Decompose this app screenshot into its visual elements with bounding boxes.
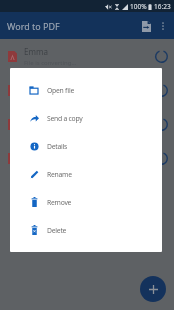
button[interactable]: Open file: [10, 76, 162, 104]
button[interactable]: Send a copy: [10, 104, 162, 132]
button[interactable]: Remove: [10, 188, 162, 216]
button[interactable]: Details: [10, 132, 162, 160]
staticText: Open file: [47, 86, 74, 95]
staticText: Details: [47, 142, 68, 151]
button[interactable]: Delete: [10, 216, 162, 244]
staticText: Emma: [24, 114, 48, 125]
staticText: Delete: [47, 226, 67, 235]
staticText: Rename: [47, 170, 72, 179]
button[interactable]: Emma: [0, 39, 174, 73]
staticText: Send a copy: [47, 114, 83, 123]
button[interactable]: Emma: [0, 73, 174, 107]
button[interactable]: Import document: [137, 17, 155, 35]
staticText: Remove: [47, 198, 72, 207]
staticText: 16:23: [154, 2, 171, 11]
button[interactable]: Emma: [0, 141, 174, 175]
staticText: Word to PDF: [7, 20, 60, 32]
button[interactable]: Rename: [10, 160, 162, 188]
button[interactable]: Add file: [140, 276, 166, 302]
staticText: Emma: [24, 46, 48, 57]
button[interactable]: More options: [155, 18, 171, 34]
button[interactable]: Emma: [0, 107, 174, 141]
staticText: 100%: [130, 2, 147, 11]
staticText: Emma: [24, 80, 48, 91]
staticText: File is converting...: [24, 93, 77, 101]
staticText: Emma: [24, 148, 48, 159]
